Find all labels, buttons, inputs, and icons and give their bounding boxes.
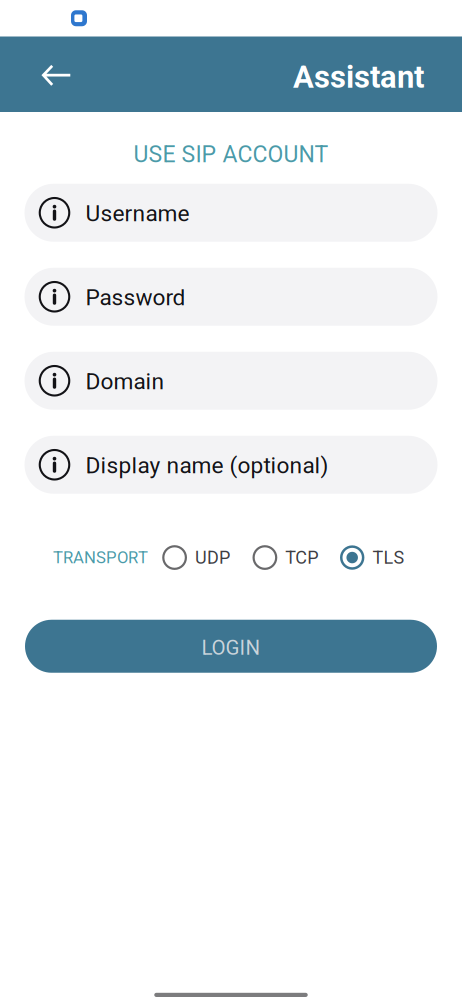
- button[interactable]: UDP: [162, 545, 230, 570]
- button[interactable]: TLS: [340, 545, 405, 570]
- staticText: Assistant: [293, 59, 424, 95]
- staticText: UDP: [195, 547, 230, 568]
- staticText: Display name (optional): [85, 452, 328, 479]
- staticText: USE SIP ACCOUNT: [133, 141, 328, 168]
- staticText: TCP: [285, 547, 318, 568]
- button[interactable]: Username: [24, 184, 437, 242]
- button[interactable]: TCP: [252, 545, 318, 570]
- staticText: Username: [85, 200, 189, 227]
- staticText: Domain: [85, 368, 164, 395]
- button[interactable]: Back: [28, 46, 84, 102]
- button[interactable]: Display name (optional): [24, 436, 437, 494]
- staticText: Password: [85, 284, 185, 311]
- staticText: TLS: [373, 547, 405, 568]
- button[interactable]: Password: [24, 268, 437, 326]
- staticText: LOGIN: [201, 636, 260, 660]
- button[interactable]: Domain: [24, 352, 437, 410]
- staticText: TRANSPORT: [53, 548, 148, 567]
- button[interactable]: LOGIN: [25, 620, 437, 673]
